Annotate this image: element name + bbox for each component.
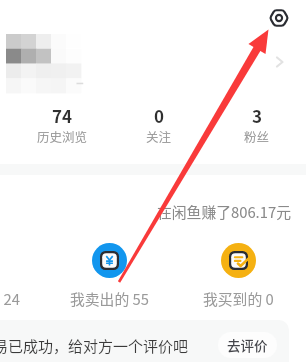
staticText: 我卖出的 24 [0, 288, 20, 309]
staticText: 3 [252, 103, 263, 128]
staticText: 关注 [146, 127, 172, 145]
staticText: 历史浏览 [37, 127, 88, 145]
staticText: 粉丝 [244, 127, 270, 145]
button[interactable]: 我卖出的 24 [0, 243, 32, 305]
staticText: 易已成功，给对方一个评价吧 [0, 335, 189, 357]
staticText: 0 [154, 103, 165, 128]
staticText: 我卖出的 55 [70, 288, 149, 309]
button[interactable]: Settings [264, 3, 293, 32]
button[interactable]: 3 [215, 100, 299, 146]
staticText: 我买到的 0 [203, 288, 274, 309]
button[interactable]: 我卖出的 55 [57, 243, 161, 305]
button[interactable]: 去评价 [218, 332, 277, 358]
staticText: 去评价 [227, 335, 268, 355]
staticText: 在闲鱼赚了806.17元 [157, 201, 291, 222]
staticText: 74 [52, 103, 73, 128]
button[interactable]: 我买到的 0 [186, 243, 290, 305]
button[interactable]: 74 [20, 100, 104, 146]
button[interactable]: 0 [117, 100, 201, 146]
